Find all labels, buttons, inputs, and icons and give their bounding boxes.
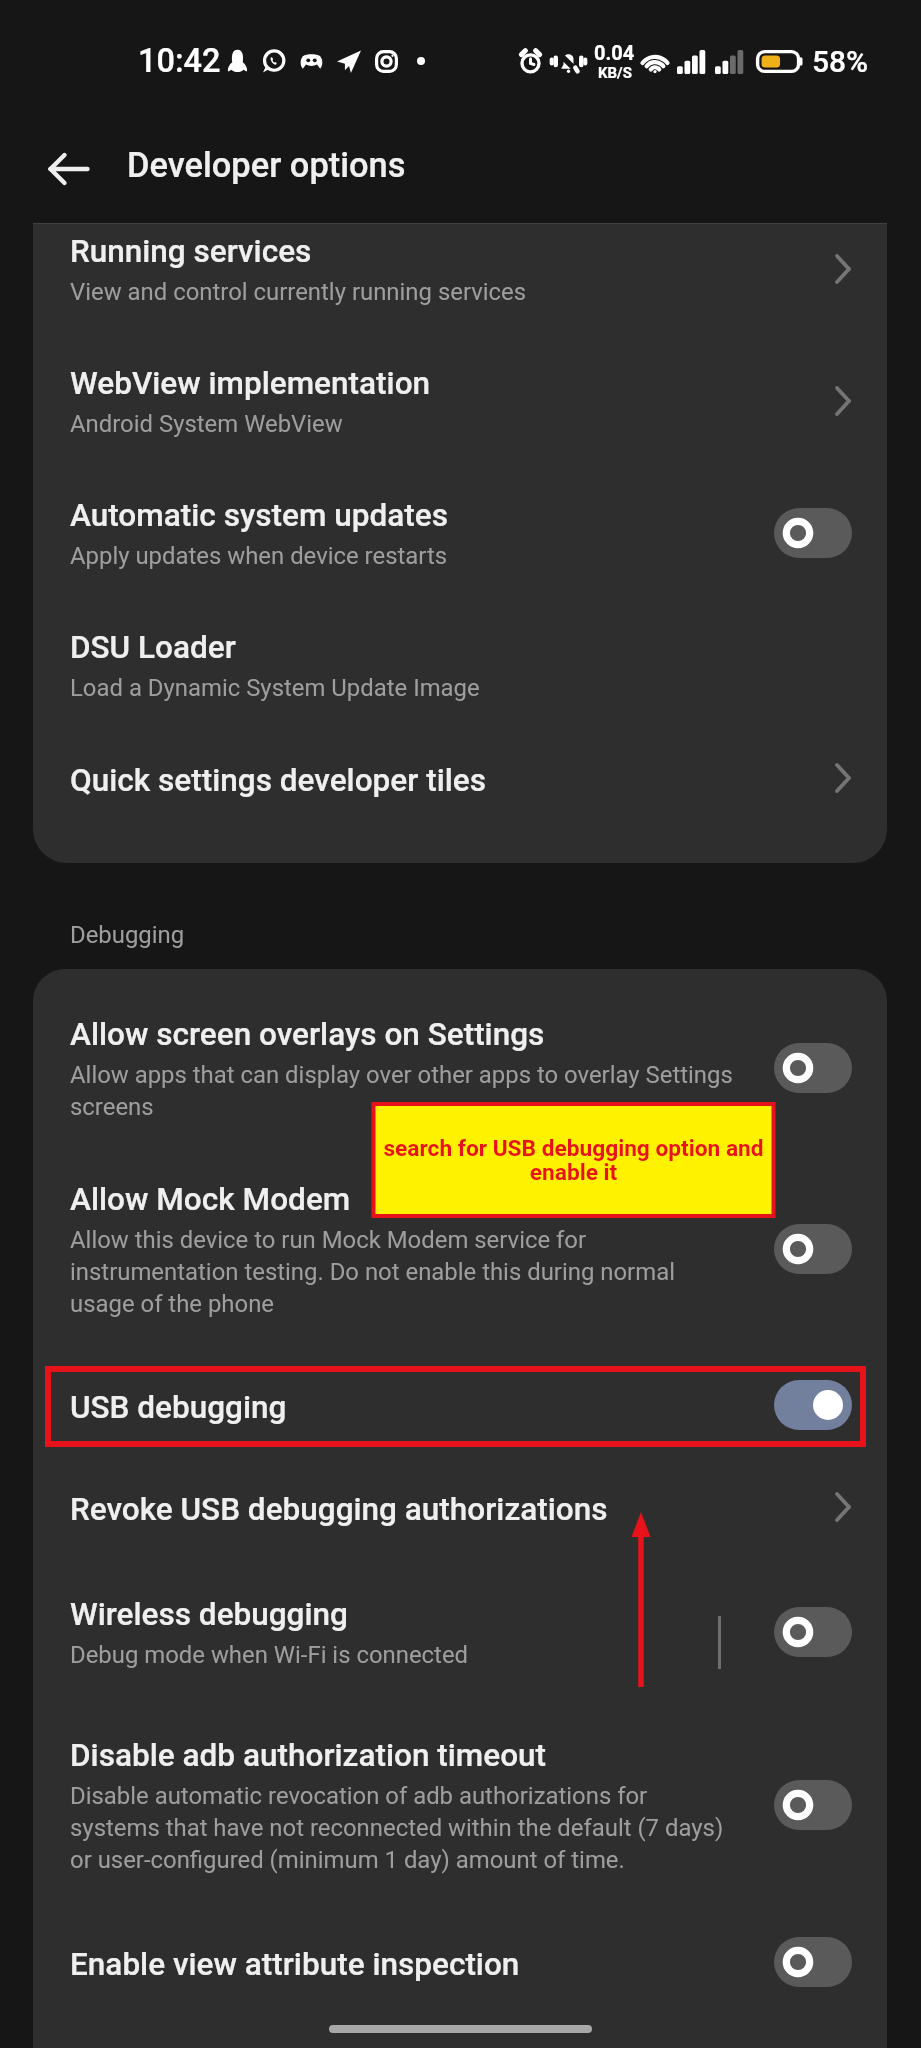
staticText: 0.04	[594, 41, 635, 64]
button[interactable]: Switch off	[774, 1607, 852, 1657]
staticText: View and control currently running servi…	[70, 278, 527, 306]
button[interactable]: Enable view attribute inspection	[33, 1939, 887, 2042]
staticText: Revoke USB debugging authorizations	[70, 1491, 608, 1528]
button[interactable]: Switch off	[774, 508, 852, 558]
staticText: USB debugging	[70, 1389, 287, 1426]
staticText: Wireless debugging	[70, 1596, 348, 1633]
staticText: Allow screen overlays on Settings	[70, 1016, 545, 1053]
button[interactable]: Switch off	[774, 1224, 852, 1274]
staticText: Quick settings developer tiles	[70, 762, 486, 799]
staticText: WebView implementation	[70, 365, 431, 402]
staticText: Allow Mock Modem	[70, 1181, 351, 1218]
staticText: Debug mode when Wi-Fi is connected	[70, 1641, 469, 1669]
button[interactable]: Switch off	[774, 1043, 852, 1093]
button[interactable]: Quick settings developer tiles	[33, 755, 887, 858]
button[interactable]: DSU Loader	[33, 622, 887, 755]
staticText: Developer options	[127, 145, 406, 185]
staticText: Disable adb authorization timeout	[70, 1737, 547, 1774]
button[interactable]: Allow Mock Modem	[33, 1174, 887, 1382]
button[interactable]: Switch off	[774, 1780, 852, 1830]
staticText: KB/S	[598, 64, 632, 82]
button[interactable]: USB debugging	[33, 1382, 887, 1484]
staticText: 58%	[812, 44, 869, 79]
staticText: 10:42	[138, 42, 221, 80]
button[interactable]: Switch off	[774, 1937, 852, 1987]
button[interactable]: Running services	[33, 226, 887, 358]
staticText: Load a Dynamic System Update Image	[70, 674, 480, 702]
button[interactable]: Wireless debugging	[33, 1589, 887, 1730]
staticText: Android System WebView	[70, 410, 343, 438]
staticText: search for USB debugging option and enab…	[378, 1135, 769, 1186]
staticText: Allow apps that can display over other a…	[70, 1061, 742, 1121]
button[interactable]: WebView implementation	[33, 358, 887, 490]
button[interactable]: Switch on	[774, 1380, 852, 1430]
staticText: Apply updates when device restarts	[70, 542, 448, 570]
staticText: Running services	[70, 233, 312, 270]
button[interactable]: Automatic system updates	[33, 490, 887, 622]
button[interactable]: Revoke USB debugging authorizations	[33, 1484, 887, 1589]
staticText: Automatic system updates	[70, 497, 448, 534]
button[interactable]: Disable adb authorization timeout	[33, 1730, 887, 1939]
staticText: DSU Loader	[70, 629, 236, 666]
button[interactable]: Allow screen overlays on Settings	[33, 1009, 887, 1174]
staticText: Enable view attribute inspection	[70, 1946, 520, 1983]
button[interactable]: Back	[31, 131, 107, 207]
staticText: Disable automatic revocation of adb auth…	[70, 1782, 742, 1874]
staticText: Allow this device to run Mock Modem serv…	[70, 1226, 742, 1318]
staticText: Debugging	[70, 921, 185, 949]
